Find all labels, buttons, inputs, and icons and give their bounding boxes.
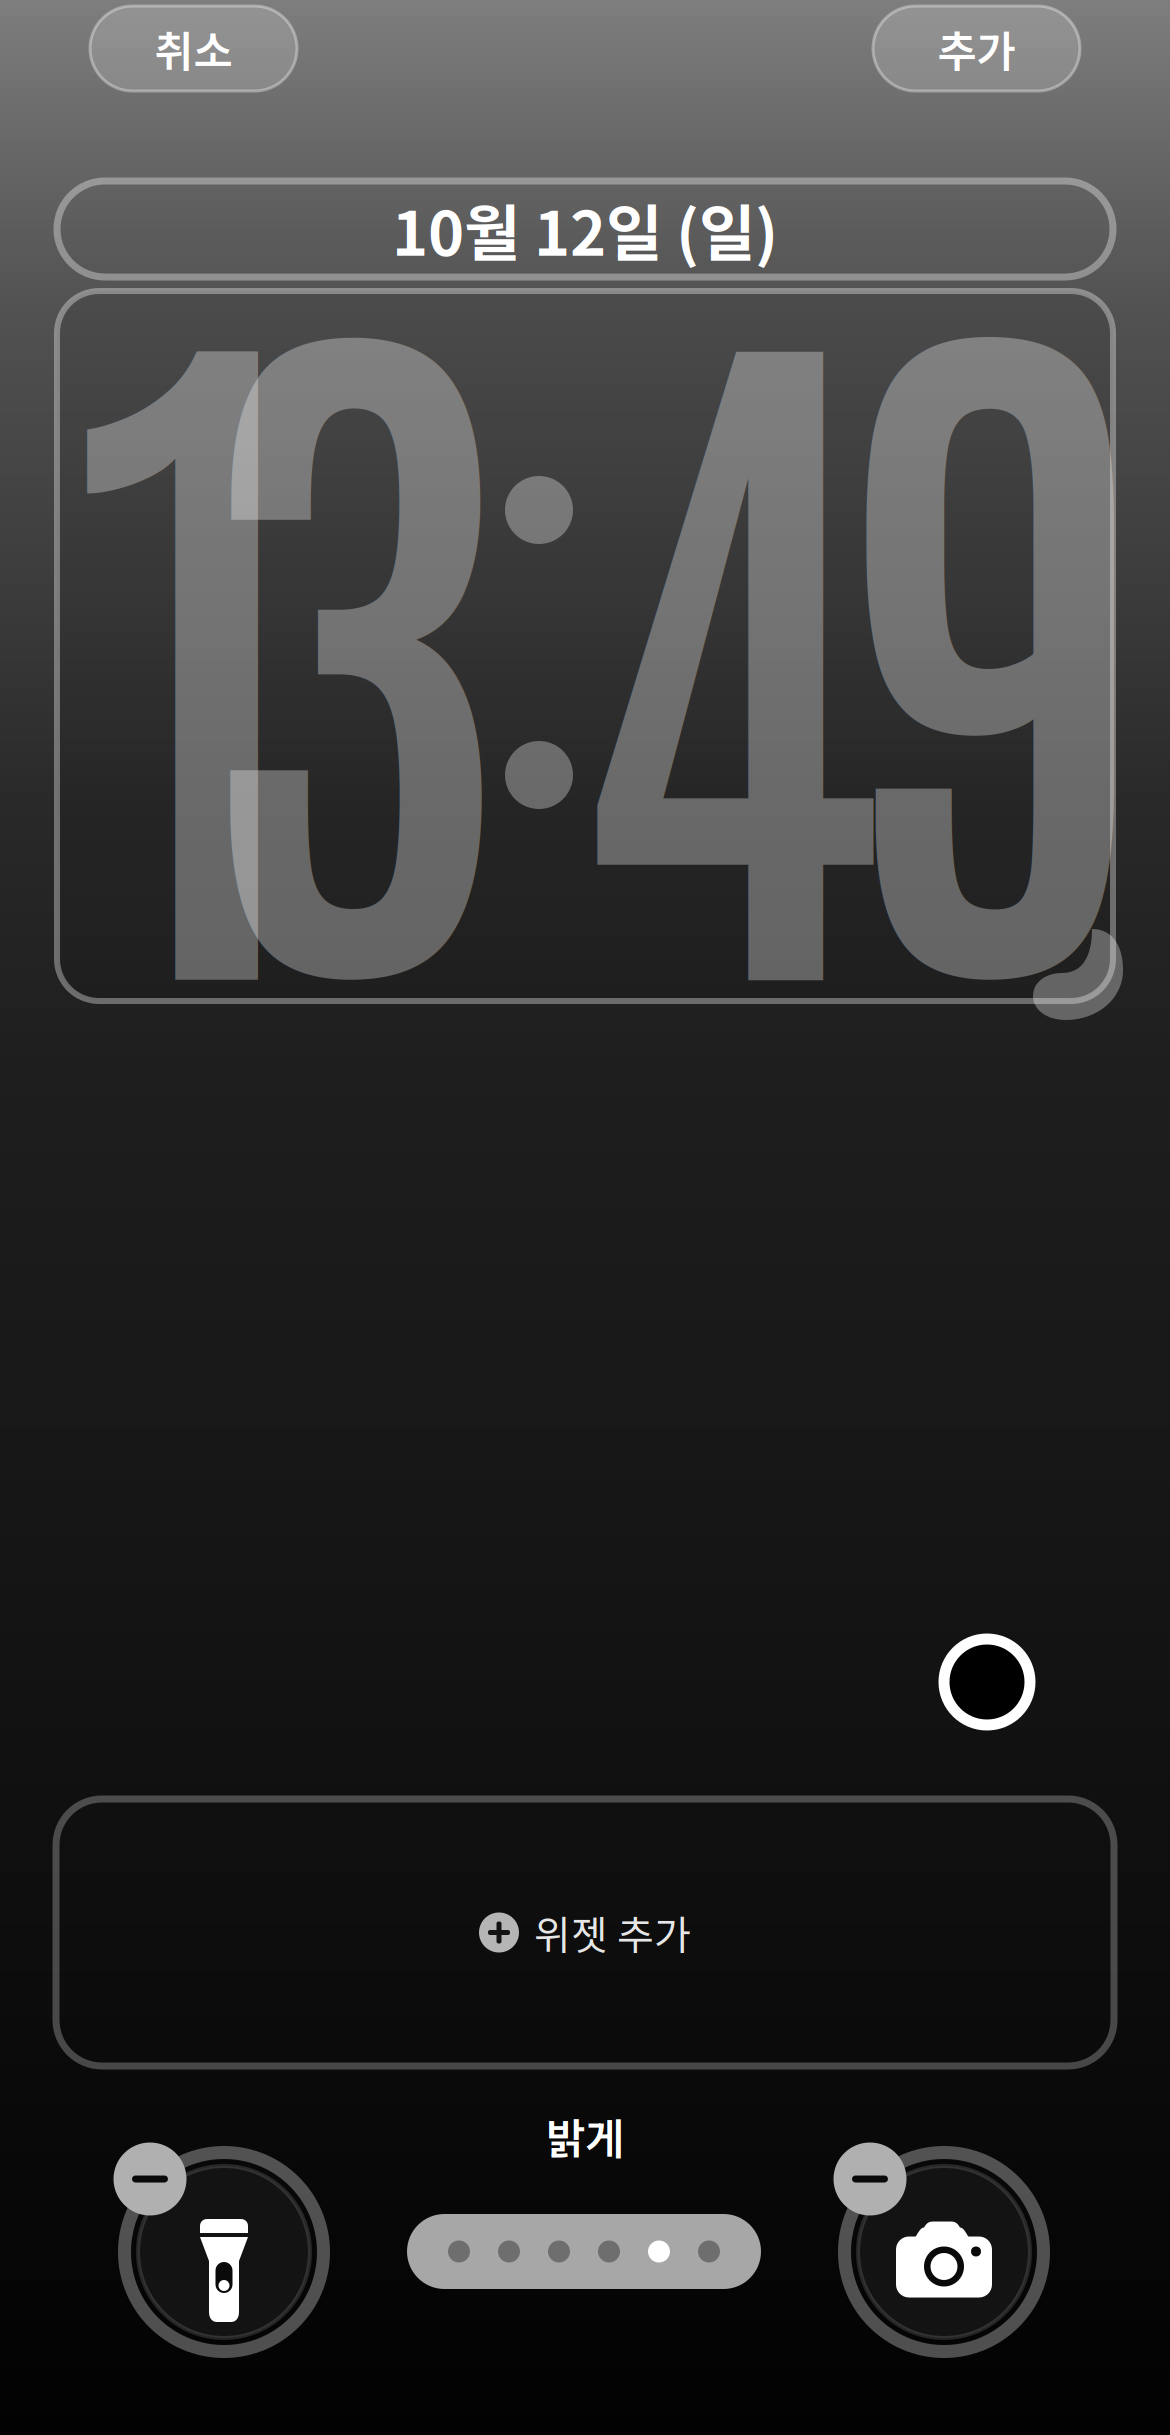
staticText: 추가 [937,18,1015,79]
staticText: 위젯 추가 [534,1903,691,1961]
button[interactable]: Flashlight [118,2146,330,2358]
button[interactable]: 1 [57,291,1113,1001]
staticText: 4 [567,136,886,1081]
button[interactable]: 위젯 추가 [56,1799,1114,2066]
staticText: 9 [835,129,1154,1074]
staticText: 3 [192,129,512,1074]
staticText: 1 [55,136,333,1081]
button[interactable]: 추가 [873,6,1080,91]
button[interactable]: 10월 12일 (일) [57,181,1113,277]
staticText: 10월 12일 (일) [392,185,778,273]
button[interactable]: Camera [838,2146,1050,2358]
button[interactable]: 취소 [90,6,297,91]
button[interactable]: Wallpaper style [944,1639,1030,1725]
staticText: 취소 [154,18,232,79]
staticText: 밝게 [546,2105,624,2167]
